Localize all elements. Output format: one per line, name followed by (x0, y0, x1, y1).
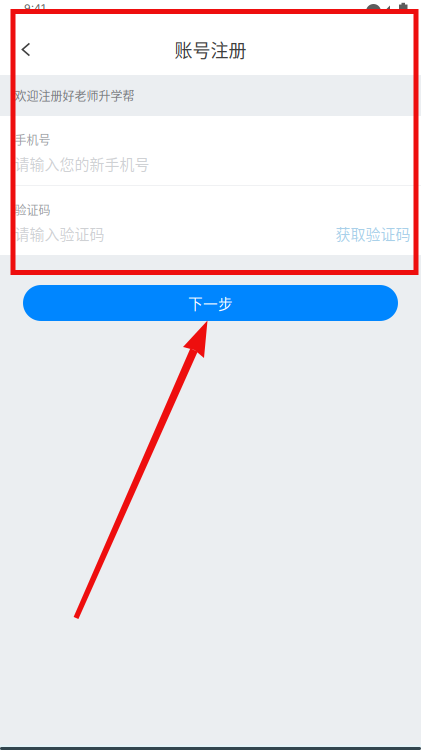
staticText: 获取验证码 (335, 223, 410, 244)
button[interactable]: Back (0, 24, 52, 75)
staticText: 下一步 (188, 292, 233, 314)
staticText: 请输入验证码 (14, 223, 104, 244)
staticText: 账号注册 (174, 36, 246, 63)
staticText: 验证码 (14, 201, 50, 218)
staticText: 请输入您的新手机号 (14, 153, 149, 174)
staticText: 9:41 (24, 2, 45, 15)
button[interactable]: 下一步 (23, 285, 398, 321)
staticText: 欢迎注册好老师升学帮 (14, 87, 134, 104)
staticText: 手机号 (14, 131, 50, 148)
button[interactable]: 获取验证码 (323, 186, 410, 255)
